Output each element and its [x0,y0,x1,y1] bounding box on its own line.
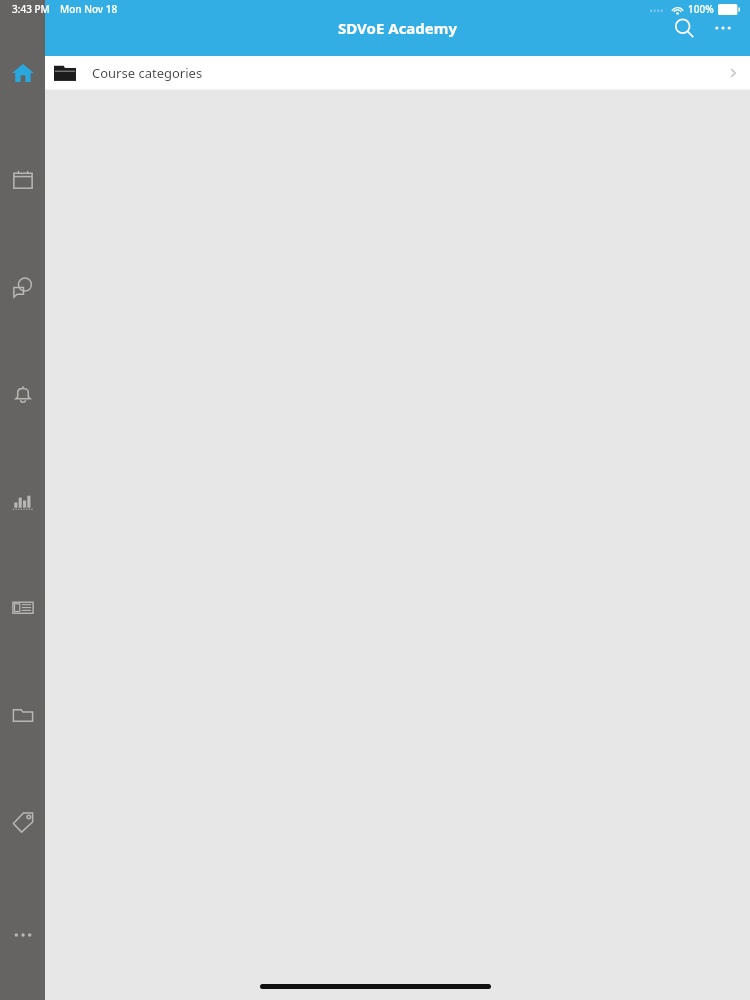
button[interactable]: Search [664,8,704,48]
button[interactable]: Messages [0,272,45,302]
button[interactable]: Home [0,58,45,88]
button[interactable]: Notifications [0,379,45,409]
staticText: SDVoE Academy [338,18,457,38]
staticText: Course categories [92,64,203,82]
staticText: 3:43 PM [12,2,50,16]
staticText: 100% [688,2,714,16]
button[interactable]: Tags [0,807,45,837]
button[interactable]: More options [704,9,742,47]
button[interactable]: Files [0,700,45,730]
button[interactable]: Calendar [0,165,45,195]
button[interactable]: Grades [0,486,45,516]
staticText: Mon Nov 18 [60,2,118,16]
button[interactable]: Course categories [45,56,750,89]
button[interactable]: News [0,593,45,623]
button[interactable]: More [0,920,45,950]
